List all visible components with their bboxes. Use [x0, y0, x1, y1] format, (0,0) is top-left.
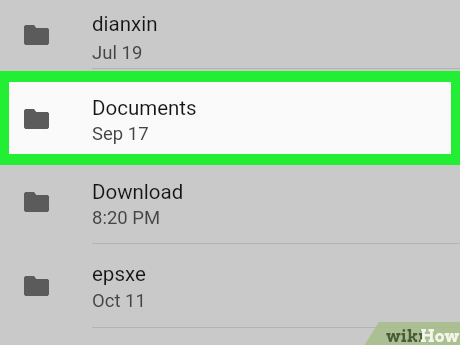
staticText: How [420, 327, 460, 345]
button[interactable]: Documents [9, 82, 451, 154]
staticText: Sep 17 [92, 123, 149, 145]
staticText: epsxe [92, 262, 146, 286]
staticText: Download [92, 180, 184, 204]
staticText: dianxin [92, 12, 158, 36]
button[interactable]: Download [0, 168, 460, 244]
staticText: Documents [92, 96, 197, 120]
staticText: Jul 19 [92, 42, 143, 64]
other: wikiHow [0, 0, 460, 345]
staticText: Oct 11 [92, 290, 146, 312]
button[interactable]: epsxe [0, 252, 460, 327]
staticText: wiki [386, 327, 425, 345]
button[interactable]: dianxin [0, 0, 460, 68]
staticText: 8:20 PM [92, 207, 161, 229]
